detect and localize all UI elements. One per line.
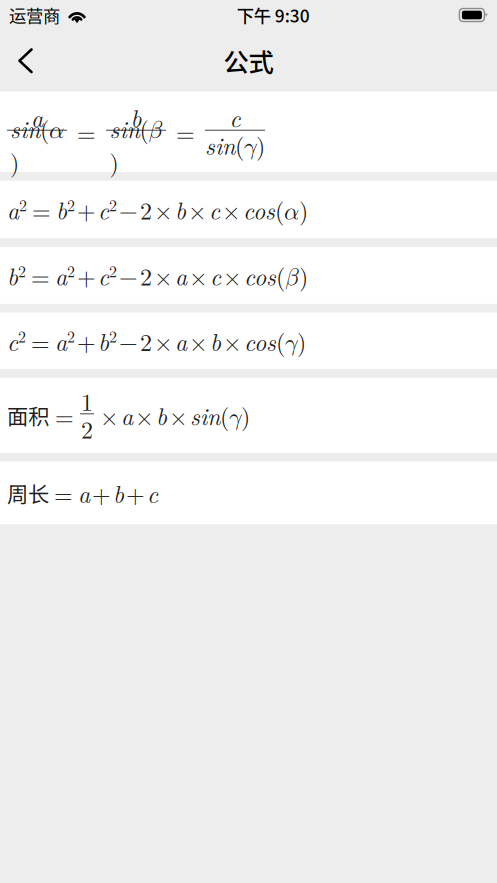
staticText: c [229,100,240,134]
staticText: sin(𝛽) [109,112,162,178]
staticText: = a + b + c [49,476,158,509]
staticText: c2 = a2 + b2 − 2 × a × b × cos(𝛾) [7,324,306,357]
staticText: 下午 9:30 [237,2,310,28]
staticText: b2 = a2 + c2 − 2 × a × c × cos(𝛽) [7,259,308,292]
staticText: 运营商 [9,2,60,28]
staticText: a2 = b2 + c2 − 2 × b × c × cos(𝛼) [7,193,308,226]
staticText: = [77,115,96,149]
staticText: 2 [81,411,93,445]
staticText: × a × b × sin(𝛾) [98,399,250,432]
button[interactable]: 返回 [0,38,46,84]
staticText: 面积 [7,400,49,431]
staticText: sin(𝛼) [10,112,64,178]
staticText: a [31,100,43,134]
staticText: 1 [81,384,93,418]
staticText: b [130,100,141,134]
staticText: 公式 [223,42,273,79]
staticText: = [53,398,76,432]
staticText: sin(𝛾) [205,128,265,161]
staticText: = [176,115,195,149]
staticText: 周长 [7,477,49,508]
